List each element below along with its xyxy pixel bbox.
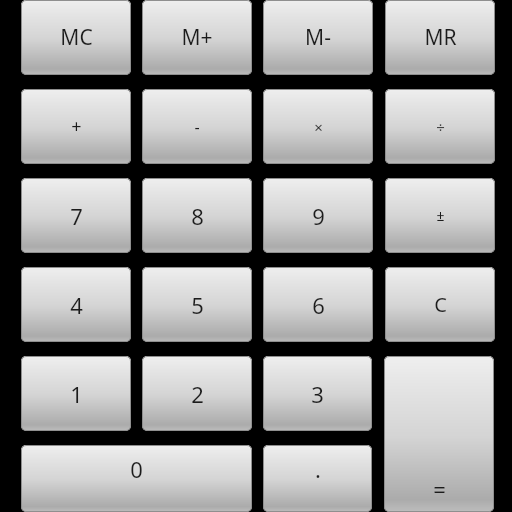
staticText: - xyxy=(194,116,200,138)
staticText: ÷ xyxy=(436,117,445,137)
staticText: C xyxy=(434,291,447,318)
button[interactable]: 2 xyxy=(142,356,252,431)
staticText: 4 xyxy=(70,290,83,320)
staticText: MC xyxy=(60,23,93,52)
button[interactable]: 1 xyxy=(21,356,131,431)
staticText: ± xyxy=(436,206,445,225)
button[interactable]: ÷ xyxy=(385,89,495,164)
staticText: M+ xyxy=(181,23,213,52)
button[interactable]: 0 xyxy=(21,445,252,512)
button[interactable]: MC xyxy=(21,0,131,75)
button[interactable]: M- xyxy=(263,0,373,75)
staticText: × xyxy=(314,117,323,137)
staticText: 3 xyxy=(311,379,324,409)
staticText: 1 xyxy=(70,379,83,409)
staticText: 0 xyxy=(130,454,143,484)
staticText: + xyxy=(71,114,82,139)
button[interactable]: × xyxy=(263,89,373,164)
staticText: M- xyxy=(305,23,331,52)
button[interactable]: 4 xyxy=(21,267,131,342)
button[interactable]: 5 xyxy=(142,267,252,342)
button[interactable]: + xyxy=(21,89,131,164)
staticText: 5 xyxy=(191,290,204,320)
staticText: MR xyxy=(424,23,457,52)
staticText: . xyxy=(315,454,321,484)
button[interactable]: C xyxy=(385,267,495,342)
button[interactable]: 6 xyxy=(263,267,373,342)
button[interactable]: M+ xyxy=(142,0,252,75)
staticText: 6 xyxy=(312,290,325,320)
staticText: = xyxy=(433,474,446,504)
button[interactable]: . xyxy=(263,445,372,512)
button[interactable]: ± xyxy=(385,178,495,253)
staticText: 9 xyxy=(312,201,325,231)
button[interactable]: MR xyxy=(385,0,495,75)
button[interactable]: 9 xyxy=(263,178,373,253)
button[interactable]: 8 xyxy=(142,178,252,253)
button[interactable]: - xyxy=(142,89,252,164)
staticText: 8 xyxy=(191,201,204,231)
button[interactable]: 7 xyxy=(21,178,131,253)
button[interactable]: = xyxy=(384,356,494,512)
staticText: 7 xyxy=(70,201,83,231)
button[interactable]: 3 xyxy=(263,356,372,431)
staticText: 2 xyxy=(191,379,204,409)
